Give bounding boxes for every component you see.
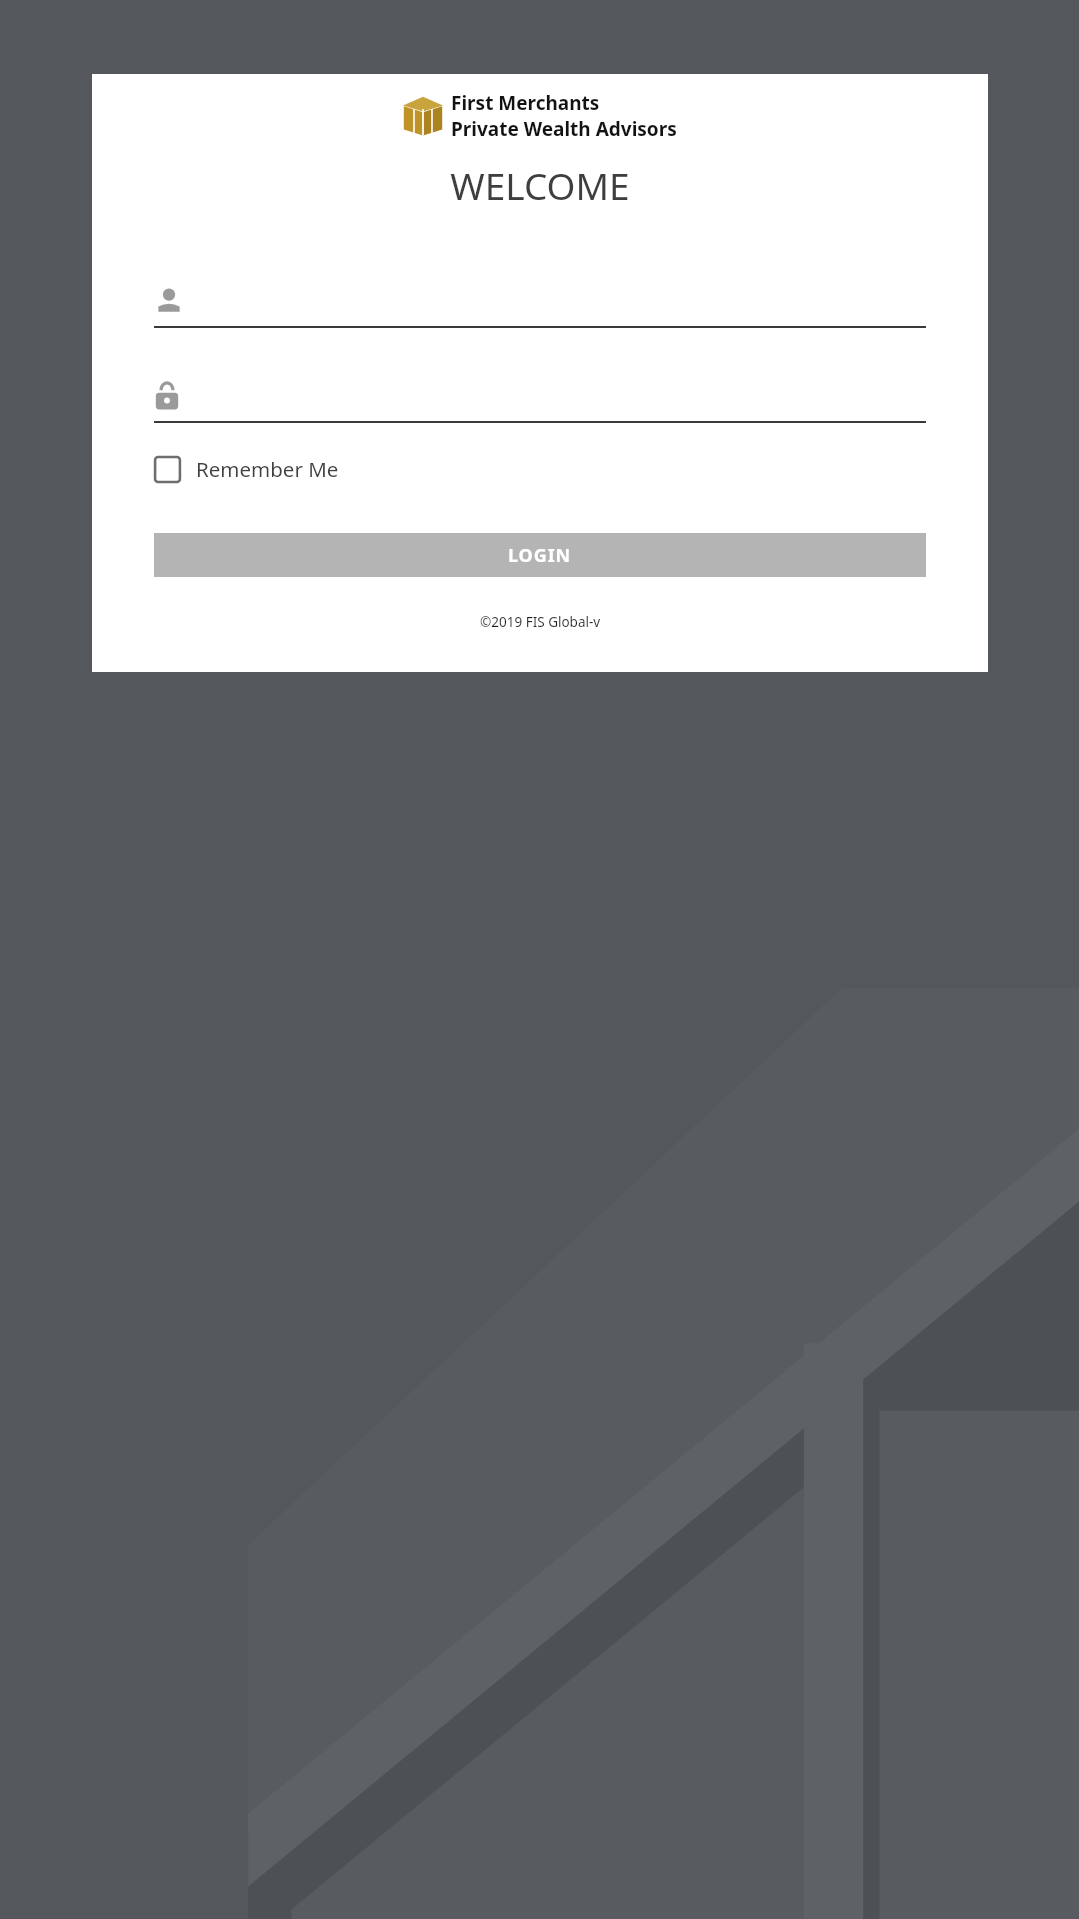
- button[interactable]: Password: [154, 371, 926, 423]
- staticText: ©2019 FIS Global-v: [480, 613, 601, 631]
- staticText: LOGIN: [508, 543, 572, 568]
- staticText: WELCOME: [450, 160, 630, 210]
- staticText: Remember Me: [196, 455, 339, 483]
- staticText: Private Wealth Advisors: [451, 116, 677, 142]
- button[interactable]: Username: [154, 276, 926, 328]
- button[interactable]: LOGIN: [154, 533, 926, 577]
- button[interactable]: Remember Me: [154, 455, 926, 483]
- staticText: First Merchants: [451, 90, 600, 116]
